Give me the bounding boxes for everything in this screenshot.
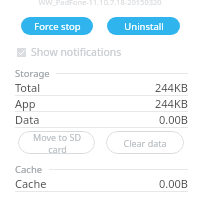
staticText: Data	[15, 112, 40, 127]
staticText: WW_PadFone-11.10.7.18-20150320	[38, 0, 162, 6]
button[interactable]: Show notifications	[0, 45, 200, 59]
staticText: App	[15, 96, 36, 111]
button[interactable]: Force stop	[21, 17, 93, 35]
button[interactable]: App	[0, 96, 200, 112]
staticText: 0.00B	[159, 112, 188, 127]
button[interactable]: Cache	[0, 176, 200, 192]
staticText: Clear data	[123, 137, 167, 149]
staticText: 0.00B	[159, 176, 188, 191]
staticText: 244KB	[155, 96, 188, 111]
button[interactable]: Clear data	[106, 131, 184, 154]
staticText: card	[48, 143, 67, 154]
staticText: 244KB	[155, 80, 188, 95]
button[interactable]: Data	[0, 112, 200, 128]
button[interactable]: Move to SD	[18, 131, 95, 154]
staticText: Force stop	[34, 20, 81, 33]
staticText: Cache	[15, 163, 43, 176]
staticText: Show notifications	[31, 45, 122, 59]
staticText: Move to SD	[33, 131, 81, 143]
staticText: Total	[15, 80, 40, 95]
staticText: Storage	[15, 67, 50, 80]
staticText: Uninstall	[124, 20, 164, 33]
staticText: Cache	[15, 176, 47, 191]
button[interactable]: Uninstall	[107, 17, 180, 35]
button[interactable]: Total	[0, 80, 200, 96]
